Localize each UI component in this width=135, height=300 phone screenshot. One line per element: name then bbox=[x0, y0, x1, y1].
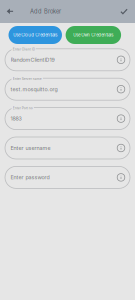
staticText: test.mosquitto.org bbox=[10, 86, 57, 92]
staticText: RandomClientID19 bbox=[10, 57, 54, 63]
staticText: Use Own Credentials bbox=[73, 32, 113, 38]
button[interactable]: Use Cloud Credentials bbox=[8, 26, 62, 44]
button[interactable]: Save bbox=[113, 0, 135, 23]
staticText: Enter username bbox=[10, 145, 50, 151]
button[interactable]: Enter username bbox=[5, 137, 130, 159]
staticText: Add Broker bbox=[30, 8, 61, 15]
button[interactable]: test.mosquitto.org bbox=[5, 78, 130, 100]
button[interactable]: RandomClientID19 bbox=[5, 49, 130, 71]
button[interactable]: Back bbox=[0, 0, 20, 23]
button[interactable]: 1883 bbox=[5, 108, 130, 130]
staticText: Enter password bbox=[10, 174, 49, 181]
staticText: Enter Server name bbox=[13, 77, 42, 81]
staticText: Use Cloud Credentials bbox=[13, 32, 57, 38]
staticText: 1883 bbox=[10, 115, 21, 122]
button[interactable]: Enter password bbox=[5, 166, 130, 188]
staticText: Enter Port no bbox=[13, 106, 33, 110]
button[interactable]: Use Own Credentials bbox=[66, 26, 121, 44]
staticText: Enter Client ID bbox=[13, 47, 35, 51]
